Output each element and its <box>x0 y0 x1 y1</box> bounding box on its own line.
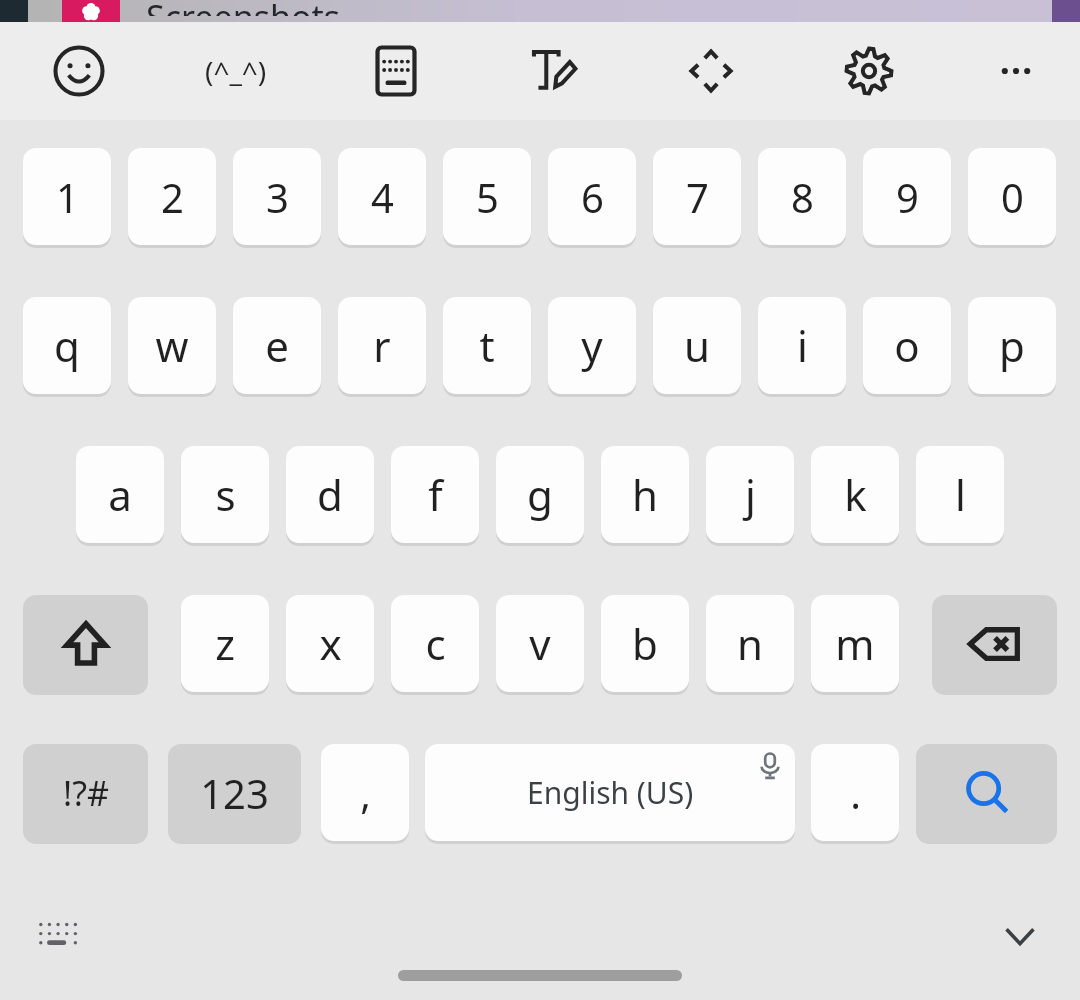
button[interactable]: Kaomoji <box>180 22 292 120</box>
button[interactable]: x <box>286 595 374 692</box>
staticText: j <box>745 466 756 523</box>
button[interactable]: Keyboard layout <box>340 22 452 120</box>
button[interactable]: 2 <box>128 148 216 245</box>
button[interactable]: a <box>76 446 164 543</box>
staticText: 5 <box>476 170 499 224</box>
staticText: g <box>527 466 553 523</box>
button[interactable]: i <box>758 297 846 394</box>
button[interactable]: . <box>811 744 899 841</box>
staticText: e <box>265 317 289 374</box>
button[interactable]: t <box>443 297 531 394</box>
button[interactable]: d <box>286 446 374 543</box>
staticText: v <box>529 615 551 672</box>
button[interactable]: Backspace <box>932 595 1057 692</box>
button[interactable]: 0 <box>968 148 1056 245</box>
staticText: n <box>737 615 763 672</box>
button[interactable]: 4 <box>338 148 426 245</box>
button[interactable]: w <box>128 297 216 394</box>
button[interactable]: b <box>601 595 689 692</box>
staticText: !?# <box>63 770 109 816</box>
staticText: Screenshots <box>146 0 341 16</box>
button[interactable]: c <box>391 595 479 692</box>
button[interactable]: Shift <box>23 595 148 692</box>
staticText: s <box>215 466 236 523</box>
button[interactable]: k <box>811 446 899 543</box>
staticText: d <box>317 466 343 523</box>
button[interactable]: e <box>233 297 321 394</box>
staticText: y <box>581 317 603 374</box>
staticText: 0 <box>1001 170 1024 224</box>
button[interactable]: Hide keyboard <box>984 900 1056 972</box>
staticText: . <box>850 766 861 820</box>
staticText: i <box>797 317 808 374</box>
button[interactable]: y <box>548 297 636 394</box>
staticText: 1 <box>56 170 79 224</box>
button[interactable]: p <box>968 297 1056 394</box>
staticText: a <box>108 466 132 523</box>
button[interactable]: More options <box>960 22 1072 120</box>
staticText: 6 <box>581 170 604 224</box>
button[interactable]: o <box>863 297 951 394</box>
button[interactable]: q <box>23 297 111 394</box>
button[interactable]: Emoji <box>23 22 135 120</box>
staticText: x <box>319 615 342 672</box>
button[interactable]: u <box>653 297 741 394</box>
button[interactable]: 5 <box>443 148 531 245</box>
staticText: m <box>835 615 875 672</box>
staticText: 8 <box>791 170 814 224</box>
button[interactable]: r <box>338 297 426 394</box>
staticText: t <box>479 317 495 374</box>
button[interactable]: l <box>916 446 1004 543</box>
staticText: 9 <box>896 170 919 224</box>
button[interactable]: Space <box>425 744 795 841</box>
staticText: 123 <box>200 766 269 820</box>
button[interactable]: Settings <box>813 22 925 120</box>
staticText: , <box>360 766 371 820</box>
staticText: 3 <box>266 170 289 224</box>
button[interactable]: 7 <box>653 148 741 245</box>
button[interactable]: 8 <box>758 148 846 245</box>
staticText: k <box>844 466 867 523</box>
staticText: English (US) <box>527 772 694 813</box>
button[interactable]: f <box>391 446 479 543</box>
button[interactable]: Cursor control <box>655 22 767 120</box>
button[interactable]: Change keyboard <box>24 900 96 972</box>
staticText: u <box>684 317 710 374</box>
button[interactable]: 6 <box>548 148 636 245</box>
button[interactable]: , <box>321 744 409 841</box>
button[interactable]: Search <box>916 744 1057 841</box>
button[interactable]: v <box>496 595 584 692</box>
staticText: z <box>215 615 235 672</box>
staticText: q <box>54 317 80 374</box>
button[interactable]: 3 <box>233 148 321 245</box>
button[interactable]: h <box>601 446 689 543</box>
staticText: f <box>428 466 443 523</box>
button[interactable]: 123 <box>168 744 301 841</box>
staticText: 4 <box>371 170 394 224</box>
button[interactable]: s <box>181 446 269 543</box>
staticText: l <box>955 466 966 523</box>
staticText: c <box>425 615 446 672</box>
button[interactable]: !?# <box>23 744 148 841</box>
button[interactable]: 1 <box>23 148 111 245</box>
staticText: w <box>155 317 189 374</box>
button[interactable]: n <box>706 595 794 692</box>
staticText: (^_^) <box>205 52 267 90</box>
staticText: o <box>894 317 920 374</box>
button[interactable]: m <box>811 595 899 692</box>
staticText: 7 <box>686 170 709 224</box>
staticText: b <box>632 615 658 672</box>
button[interactable]: g <box>496 446 584 543</box>
staticText: r <box>373 317 391 374</box>
staticText: h <box>632 466 658 523</box>
button[interactable]: j <box>706 446 794 543</box>
button[interactable]: 9 <box>863 148 951 245</box>
button[interactable]: Text editing <box>497 22 609 120</box>
button[interactable]: z <box>181 595 269 692</box>
staticText: p <box>999 317 1025 374</box>
staticText: 2 <box>161 170 184 224</box>
